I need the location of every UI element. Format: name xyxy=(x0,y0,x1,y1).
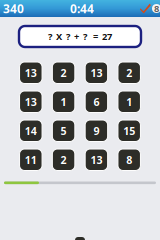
button[interactable]: 9 xyxy=(85,120,108,141)
button[interactable]: 13 xyxy=(19,91,42,112)
staticText: 13 xyxy=(25,66,37,80)
staticText: 1 xyxy=(126,95,132,109)
staticText: 9 xyxy=(93,124,99,138)
staticText: 13 xyxy=(90,153,102,167)
button[interactable]: 2 xyxy=(52,149,75,170)
button[interactable]: 5 xyxy=(52,120,75,141)
staticText: 1 xyxy=(61,95,67,109)
button[interactable]: 8 xyxy=(152,4,160,13)
button[interactable]: 8 xyxy=(118,149,140,170)
staticText: 2 xyxy=(126,66,132,80)
button[interactable]: 1 xyxy=(52,91,75,112)
staticText: 14 xyxy=(25,124,37,138)
button[interactable]: 2 xyxy=(118,62,140,83)
button[interactable]: 13 xyxy=(85,149,108,170)
button[interactable]: Correct xyxy=(140,3,151,14)
button[interactable]: 2 xyxy=(52,62,75,83)
button[interactable]: 14 xyxy=(19,120,42,141)
button[interactable]: 6 xyxy=(85,91,108,112)
button[interactable]: 15 xyxy=(118,120,140,141)
staticText: 13 xyxy=(90,66,102,80)
staticText: 6 xyxy=(93,95,99,109)
button[interactable]: Next xyxy=(75,232,85,240)
staticText: 8 xyxy=(126,153,132,167)
staticText: 2 xyxy=(61,153,67,167)
staticText: ? X ? + ? = 27 xyxy=(48,30,112,43)
staticText: 2 xyxy=(61,66,67,80)
staticText: 340 xyxy=(3,0,24,16)
staticText: 5 xyxy=(61,124,67,138)
staticText: 11 xyxy=(25,153,37,167)
staticText: 0:44 xyxy=(70,0,94,16)
button[interactable]: 11 xyxy=(19,149,42,170)
button[interactable]: 1 xyxy=(118,91,140,112)
button[interactable]: 13 xyxy=(85,62,108,83)
staticText: 13 xyxy=(25,95,37,109)
button[interactable]: 13 xyxy=(19,62,42,83)
staticText: 15 xyxy=(123,124,135,138)
staticText: 8 xyxy=(154,2,159,15)
